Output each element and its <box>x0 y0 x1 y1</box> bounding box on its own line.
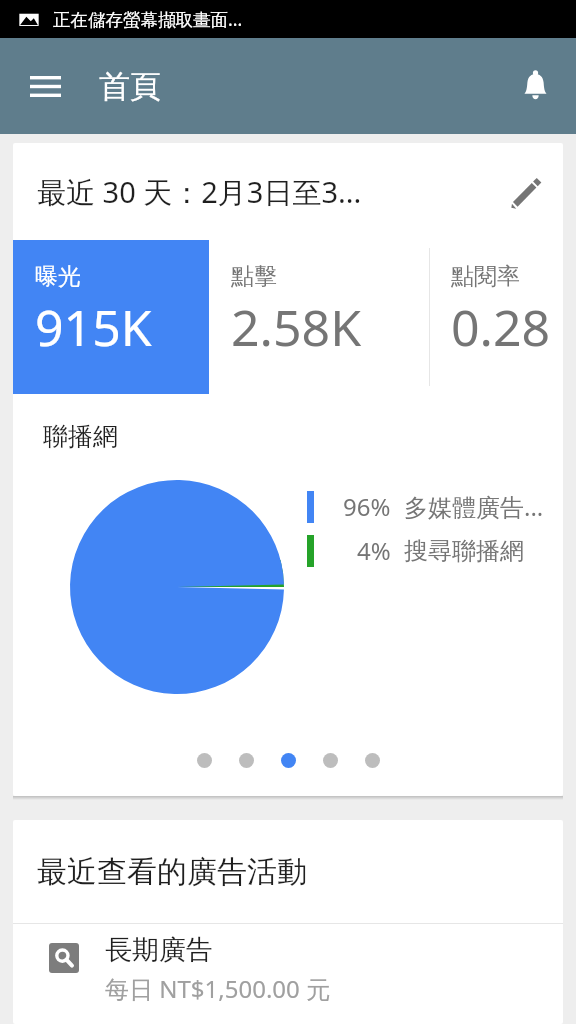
staticText: 正在儲存螢幕擷取畫面... <box>53 7 243 31</box>
staticText: 4% <box>357 534 391 567</box>
staticText: 聯播網 <box>43 421 118 452</box>
staticText: 搜尋聯播網 <box>404 536 524 566</box>
button[interactable]: 長期廣告 <box>13 924 563 1024</box>
button[interactable]: 曝光 <box>13 240 209 394</box>
staticText: 多媒體廣告... <box>404 490 544 523</box>
staticText: 最近 30 天：2月3日至3... <box>37 172 495 212</box>
button[interactable]: Go to page 5 <box>360 748 384 772</box>
button[interactable]: Open navigation drawer <box>16 57 74 115</box>
button[interactable]: Go to page 3 <box>276 748 300 772</box>
staticText: 點擊 <box>231 262 277 291</box>
button[interactable]: Go to page 1 <box>192 748 216 772</box>
staticText: 每日 NT$1,500.00 元 <box>105 972 331 1005</box>
button[interactable]: Go to page 4 <box>318 748 342 772</box>
button[interactable]: 點擊 <box>209 240 429 394</box>
button[interactable]: Edit date range <box>495 161 557 223</box>
staticText: 點閱率 <box>451 262 520 291</box>
staticText: 96% <box>343 490 391 523</box>
button[interactable]: Notifications <box>506 57 564 115</box>
button[interactable]: 點閱率 <box>429 240 563 394</box>
button[interactable]: 最近查看的廣告活動 <box>13 820 563 923</box>
staticText: 915K <box>35 293 152 361</box>
staticText: 最近查看的廣告活動 <box>37 853 307 891</box>
staticText: 長期廣告 <box>105 933 213 967</box>
staticText: 2.58K <box>231 293 362 361</box>
button[interactable]: Go to page 2 <box>234 748 258 772</box>
staticText: 0.28 <box>451 293 551 361</box>
staticText: 曝光 <box>35 262 81 291</box>
staticText: 首頁 <box>99 67 161 106</box>
button[interactable]: 最近 30 天：2月3日至3... <box>13 143 563 240</box>
